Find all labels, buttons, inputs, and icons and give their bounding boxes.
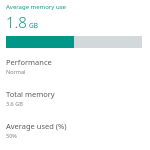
staticText: 50% — [6, 132, 17, 139]
staticText: Average used (%) — [6, 121, 67, 131]
staticText: 3.6 GB — [6, 100, 23, 107]
button[interactable]: Total memory — [0, 88, 150, 108]
staticText: Performance — [6, 57, 52, 67]
button[interactable]: Average used (%) — [0, 120, 150, 140]
staticText: Average memory use — [6, 3, 66, 11]
staticText: 1.8 — [6, 12, 27, 32]
staticText: GB — [29, 21, 38, 30]
button[interactable]: Performance — [0, 56, 150, 76]
staticText: Total memory — [6, 89, 55, 99]
staticText: Normal — [6, 68, 26, 75]
